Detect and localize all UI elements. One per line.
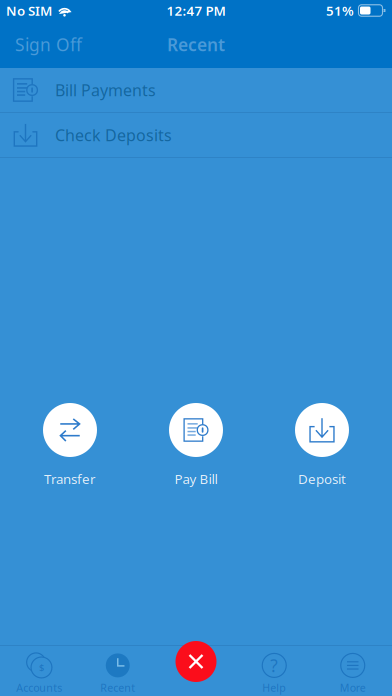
staticText: Accounts <box>16 680 62 695</box>
staticText: Recent <box>100 680 135 695</box>
staticText: No SIM <box>6 2 52 19</box>
button[interactable]: More <box>313 645 392 696</box>
button[interactable]: Close <box>175 641 216 682</box>
staticText: ? <box>270 654 278 677</box>
staticText: Transfer <box>44 470 96 488</box>
staticText: Help <box>262 680 286 695</box>
button[interactable]: Sign Off <box>0 21 97 68</box>
button[interactable]: Transfer <box>10 403 130 488</box>
staticText: More <box>340 680 366 695</box>
button[interactable]: ? <box>235 645 313 696</box>
button[interactable]: $ <box>0 645 78 696</box>
button[interactable]: Check Deposits <box>0 113 392 158</box>
button[interactable]: Pay Bill <box>136 403 256 488</box>
staticText: Check Deposits <box>55 124 172 146</box>
staticText: 51% <box>326 2 354 19</box>
button[interactable]: Recent <box>78 645 157 696</box>
staticText: 12:47 PM <box>166 2 225 19</box>
staticText: Sign Off <box>15 33 82 56</box>
staticText: Recent <box>167 33 225 56</box>
staticText: $ <box>39 661 44 674</box>
staticText: Pay Bill <box>174 470 217 488</box>
staticText: Deposit <box>298 470 346 488</box>
button[interactable]: Deposit <box>262 403 382 488</box>
staticText: Bill Payments <box>55 79 156 101</box>
button[interactable]: Bill Payments <box>0 68 392 113</box>
